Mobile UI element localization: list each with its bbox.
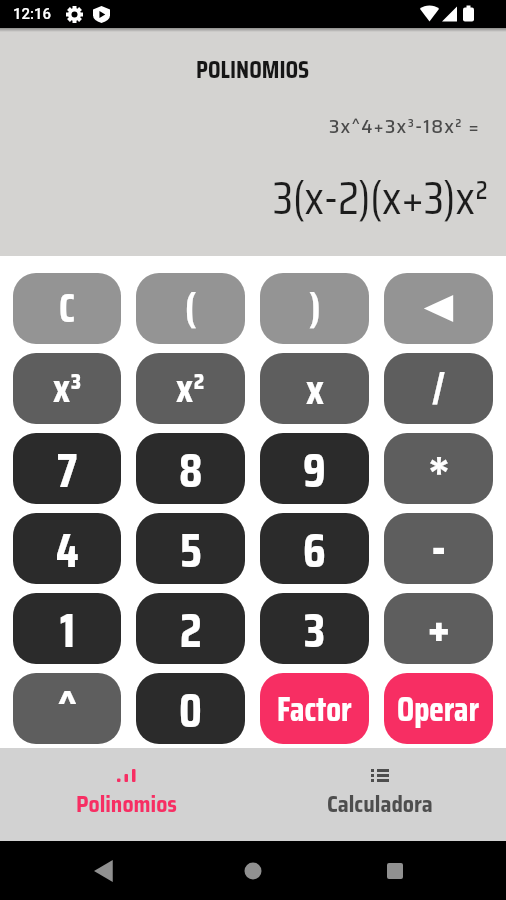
staticText: - [431,513,447,578]
button[interactable]: x³ [13,353,121,424]
button[interactable]: ) [260,273,369,344]
staticText: 9 [303,433,326,504]
button[interactable]: 5 [136,513,245,584]
button[interactable] [383,859,407,883]
button[interactable]: x [260,353,369,424]
button[interactable]: 7 [13,433,121,504]
staticText: POLINOMIOS [196,50,310,89]
staticText: Factor [277,682,352,736]
staticText: + [427,593,451,659]
button[interactable]: 0 [136,673,245,744]
button[interactable]: 2 [136,593,245,664]
staticText: 3(x-2)(x+3)x² [273,161,489,235]
staticText: Calculadora [327,787,433,822]
button[interactable]: Factor [260,673,369,744]
staticText: 0 [179,673,202,744]
staticText: 1 [60,593,75,664]
staticText: Polinomios [76,787,177,822]
button[interactable]: 3 [260,593,369,664]
staticText: ^ [58,673,77,744]
staticText: C [59,277,75,340]
button[interactable]: Polinomios [0,748,253,841]
button[interactable]: 1 [13,593,121,664]
staticText: 6 [303,513,326,584]
button[interactable]: 4 [13,513,121,584]
staticText: Operar [397,682,480,736]
button[interactable]: Calculadora [253,748,506,841]
staticText: * [428,433,450,504]
staticText: 3 [304,593,325,664]
button[interactable] [241,859,265,883]
staticText: 8 [179,433,203,504]
staticText: x² [176,357,205,420]
button[interactable]: / [384,353,493,424]
staticText: 3x^4+3x³-18x² = [329,110,480,141]
staticText: 7 [57,433,78,504]
staticText: x [306,356,324,422]
staticText: 5 [180,513,202,584]
button[interactable]: Operar [384,673,493,744]
staticText: / [432,357,446,420]
staticText: x³ [53,357,82,420]
button[interactable]: C [13,273,121,344]
button[interactable]: + [384,593,493,664]
staticText: ) [309,277,321,340]
staticText: 12:16 [13,5,52,23]
button[interactable]: ^ [13,673,121,744]
button[interactable] [94,859,118,883]
button[interactable] [384,273,493,344]
staticText: 2 [180,593,202,664]
staticText: 4 [56,513,79,584]
button[interactable]: 8 [136,433,245,504]
button[interactable]: ( [136,273,245,344]
button[interactable]: 9 [260,433,369,504]
button[interactable]: x² [136,353,245,424]
button[interactable]: * [384,433,493,504]
staticText: ( [185,277,197,340]
button[interactable]: 6 [260,513,369,584]
button[interactable]: - [384,513,493,584]
